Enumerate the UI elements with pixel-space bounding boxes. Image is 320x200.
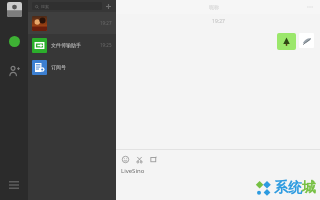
staticText: 文件传输助手 [51,42,81,48]
button[interactable]: 订阅号 [28,56,116,78]
staticText: 19:27 [212,18,225,25]
button[interactable]: Contacts [3,60,25,82]
button[interactable]: Files [149,155,158,164]
staticText: 订阅号 [51,64,66,70]
button[interactable]: Add [105,3,112,10]
staticText: 城 [302,179,316,197]
button[interactable]: Search [32,2,102,10]
button[interactable]: 19:27 [28,12,116,34]
button[interactable] [277,33,296,50]
button[interactable]: Emoji [121,155,130,164]
staticText: 搜索 [41,4,49,9]
staticText: 系统 [274,179,302,197]
staticText: 昵称 [209,4,219,10]
button[interactable]: 文件传输助手 [28,34,116,56]
button[interactable]: Chats [3,30,25,52]
button[interactable]: Profile [7,2,22,17]
staticText: 19:25 [100,42,112,48]
staticText: 19:27 [100,20,112,26]
button[interactable]: Avatar [299,33,314,48]
staticText: LiveSino [121,167,145,175]
button[interactable]: More [306,3,314,11]
button[interactable]: Screenshot [135,155,144,164]
button[interactable]: Menu [3,174,25,196]
